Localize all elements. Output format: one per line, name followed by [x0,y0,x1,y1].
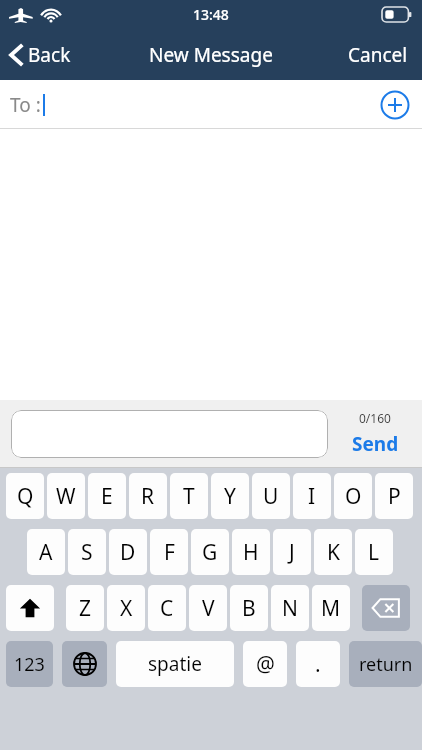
button[interactable] [11,410,328,458]
staticText: T [183,482,195,511]
staticText: 123 [14,652,45,677]
staticText: M [321,594,341,623]
staticText: Y [224,482,236,511]
button[interactable]: R [129,473,167,519]
staticText: I [308,482,316,511]
button[interactable]: Add contact [380,90,410,120]
staticText: W [56,482,76,511]
staticText: G [202,538,218,567]
button[interactable]: J [273,529,311,575]
staticText: J [289,538,295,567]
button[interactable]: F [150,529,188,575]
button[interactable]: O [334,473,372,519]
staticText: A [39,538,53,567]
staticText: V [202,594,215,623]
staticText: D [120,538,136,567]
staticText: P [388,482,401,511]
staticText: To : [10,92,41,118]
button[interactable]: A [27,529,65,575]
staticText: 13:48 [193,5,229,24]
staticText: B [242,594,256,623]
button[interactable]: Cancel [334,34,422,76]
button[interactable]: X [107,585,145,631]
button[interactable]: 123 [6,641,53,687]
button[interactable]: B [230,585,268,631]
staticText: O [345,482,362,511]
staticText: U [263,482,279,511]
button[interactable]: spatie [116,641,234,687]
staticText: 0/160 [359,410,391,426]
button[interactable]: Shift [6,585,54,631]
button[interactable]: return [349,641,422,687]
button[interactable]: G [191,529,229,575]
button[interactable]: C [148,585,186,631]
staticText: H [243,538,259,567]
staticText: R [141,482,155,511]
button[interactable]: S [68,529,106,575]
button[interactable]: T [170,473,208,519]
staticText: S [81,538,93,567]
button[interactable]: U [252,473,290,519]
staticText: X [120,594,133,623]
button[interactable]: V [189,585,227,631]
button[interactable]: . [296,641,340,687]
button[interactable]: E [88,473,126,519]
staticText: New Message [149,42,273,68]
button[interactable]: Y [211,473,249,519]
button[interactable]: N [271,585,309,631]
button[interactable]: D [109,529,147,575]
staticText: E [101,482,113,511]
button[interactable]: I [293,473,331,519]
staticText: N [282,594,298,623]
button[interactable]: P [375,473,413,519]
staticText: Cancel [348,42,408,68]
staticText: Back [28,42,71,68]
button[interactable]: Q [6,473,44,519]
button[interactable]: K [314,529,352,575]
button[interactable]: Back [0,36,81,74]
button[interactable]: M [312,585,350,631]
staticText: Q [17,482,34,511]
staticText: spatie [148,651,202,677]
button[interactable]: L [355,529,393,575]
staticText: K [327,538,340,567]
staticText: return [359,652,413,677]
button[interactable]: H [232,529,270,575]
button[interactable]: Backspace [362,585,410,631]
button[interactable]: Z [66,585,104,631]
button[interactable]: Send [346,429,405,459]
staticText: @ [256,650,275,679]
staticText: . [315,650,321,679]
staticText: C [160,594,174,623]
button[interactable]: W [47,473,85,519]
staticText: Z [79,594,92,623]
staticText: F [164,538,175,567]
button[interactable]: @ [243,641,287,687]
staticText: L [368,538,380,567]
button[interactable]: Switch language [62,641,107,687]
staticText: Send [352,431,399,457]
